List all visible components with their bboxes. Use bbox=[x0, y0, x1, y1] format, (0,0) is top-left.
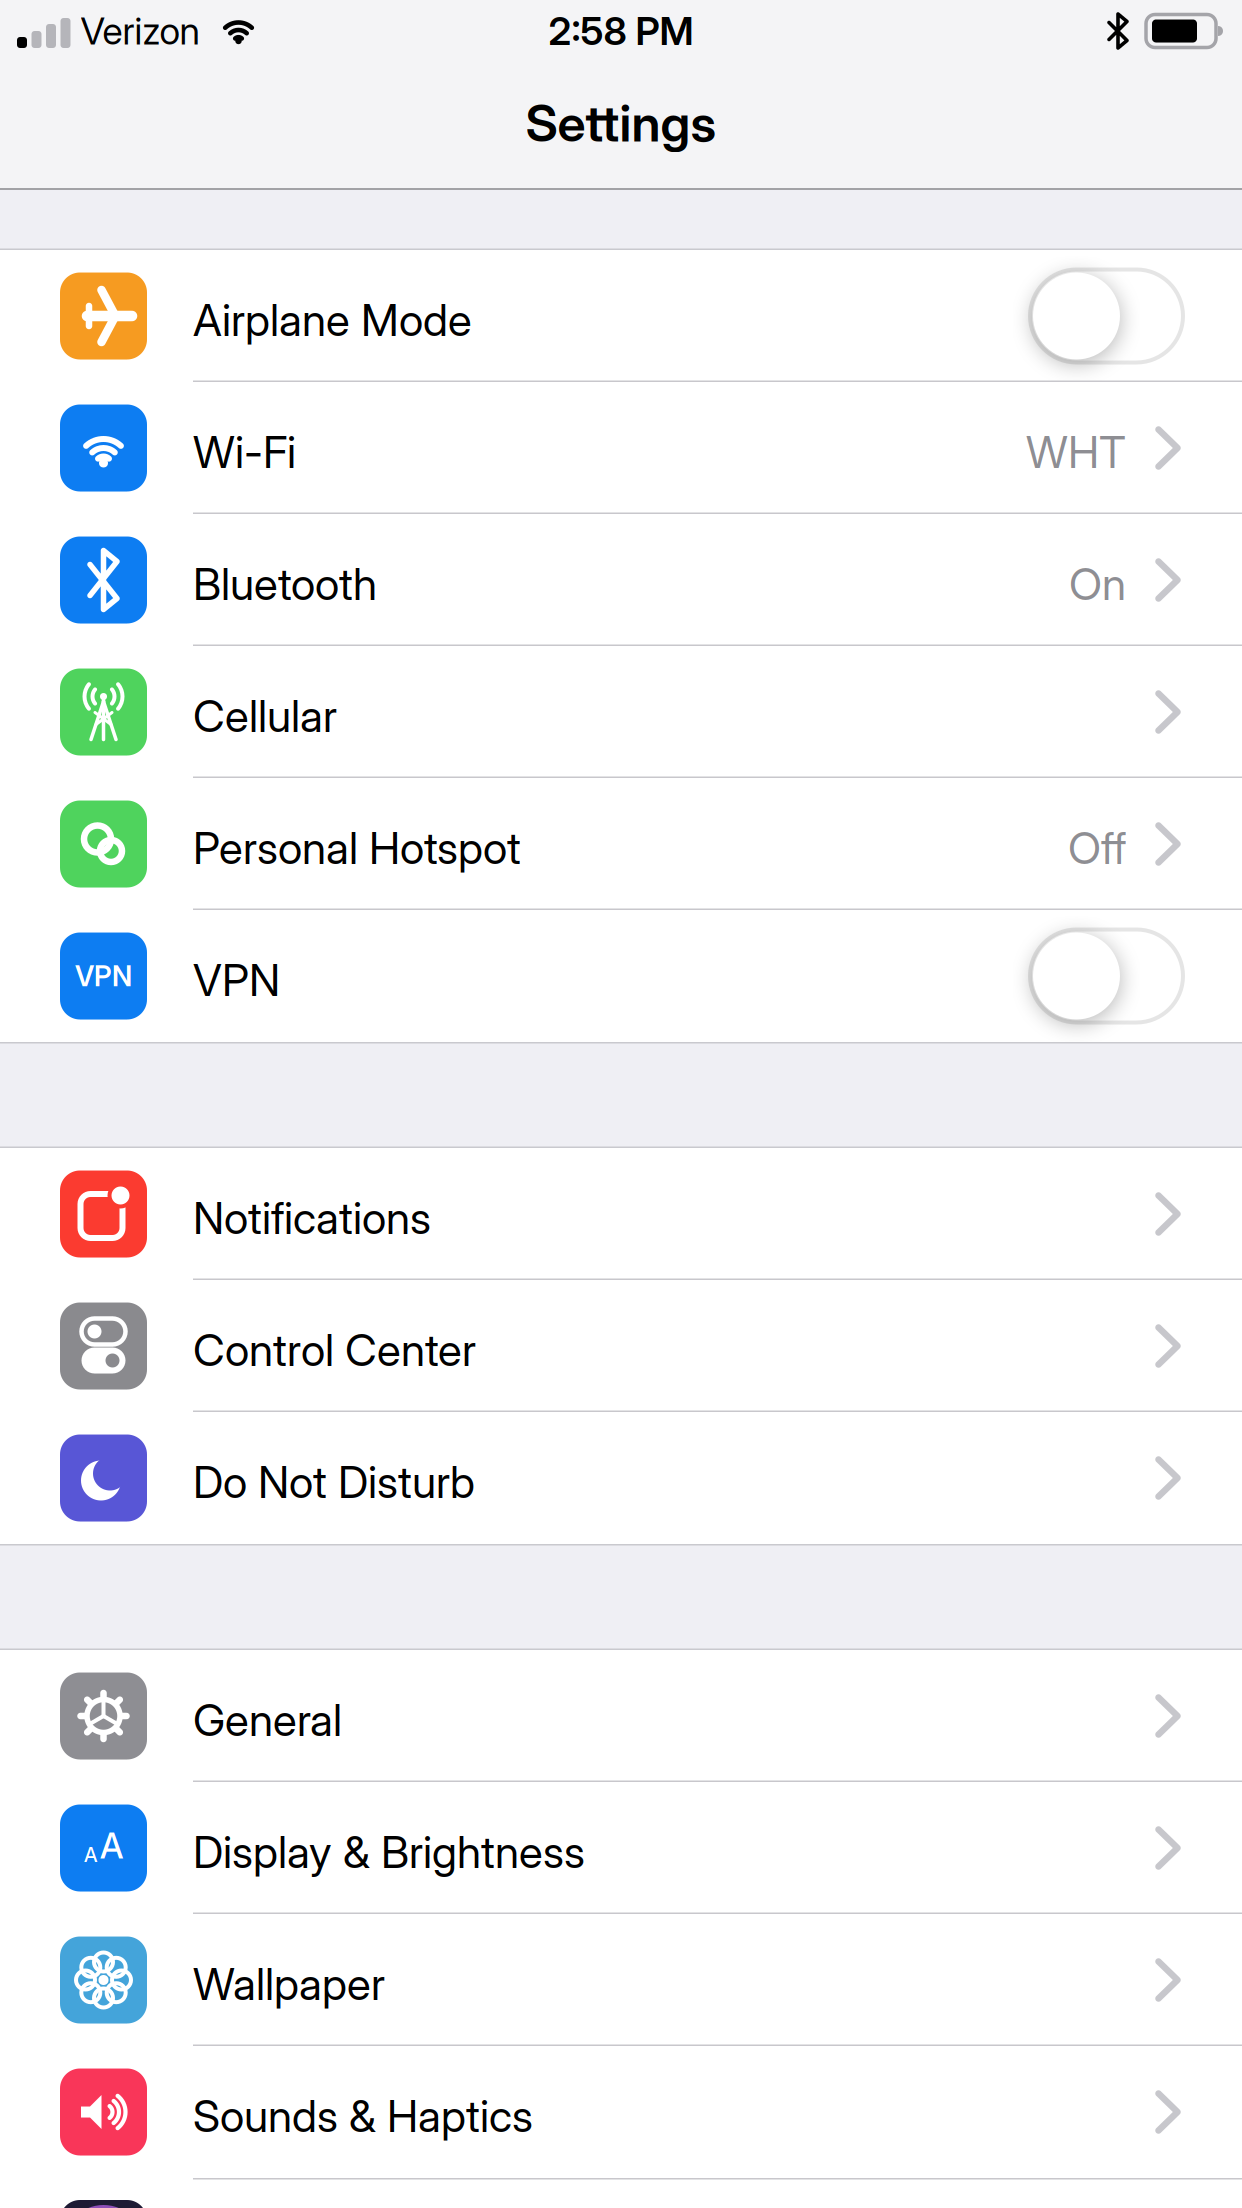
button[interactable]: Do Not Disturb bbox=[0, 1412, 1242, 1544]
staticText: Airplane Mode bbox=[193, 294, 472, 346]
staticText: Bluetooth bbox=[193, 558, 377, 610]
button[interactable]: Wi-Fi bbox=[0, 382, 1242, 514]
button[interactable]: A bbox=[0, 1782, 1242, 1914]
staticText: Settings bbox=[525, 93, 716, 153]
button[interactable]: VPN bbox=[0, 910, 1242, 1042]
staticText: WHT bbox=[1026, 426, 1126, 478]
button[interactable]: Siri & Search bbox=[0, 2178, 1242, 2208]
staticText: General bbox=[193, 1694, 342, 1746]
staticText: A bbox=[84, 1843, 97, 1866]
staticText: Verizon bbox=[80, 9, 199, 53]
staticText: On bbox=[1069, 558, 1126, 610]
staticText: 2:58 PM bbox=[548, 8, 693, 54]
staticText: Off bbox=[1068, 822, 1126, 874]
button[interactable]: Cellular bbox=[0, 646, 1242, 778]
staticText: Wallpaper bbox=[193, 1958, 385, 2010]
button[interactable]: Control Center bbox=[0, 1280, 1242, 1412]
staticText: Display & Brightness bbox=[193, 1826, 585, 1878]
staticText: Sounds & Haptics bbox=[193, 2090, 533, 2142]
button[interactable]: Notifications bbox=[0, 1148, 1242, 1280]
staticText: Notifications bbox=[193, 1192, 431, 1244]
staticText: Personal Hotspot bbox=[193, 822, 521, 874]
staticText: Cellular bbox=[193, 690, 337, 742]
button[interactable]: Wallpaper bbox=[0, 1914, 1242, 2046]
button[interactable]: Sounds & Haptics bbox=[0, 2046, 1242, 2178]
button[interactable]: General bbox=[0, 1650, 1242, 1782]
staticText: Control Center bbox=[193, 1324, 476, 1376]
staticText: VPN bbox=[75, 959, 132, 992]
button[interactable]: Personal Hotspot bbox=[0, 778, 1242, 910]
button[interactable]: Airplane Mode bbox=[0, 250, 1242, 382]
staticText: Wi-Fi bbox=[193, 426, 296, 478]
staticText: Do Not Disturb bbox=[193, 1456, 475, 1508]
staticText: VPN bbox=[193, 954, 280, 1006]
staticText: A bbox=[100, 1826, 123, 1866]
button[interactable]: Bluetooth bbox=[0, 514, 1242, 646]
